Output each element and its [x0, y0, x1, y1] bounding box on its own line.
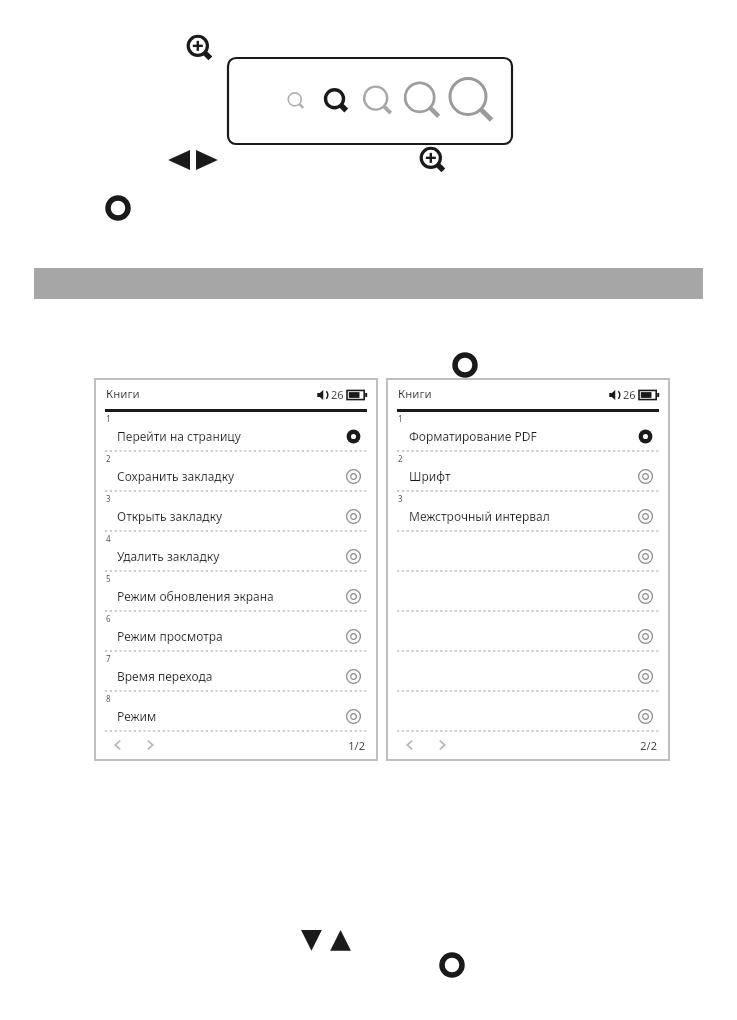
- staticText: Межстрочный интервал: [409, 508, 550, 524]
- staticText: Открыть закладку: [117, 508, 223, 524]
- button[interactable]: 1: [387, 412, 669, 452]
- button[interactable]: Down and up: [300, 928, 352, 952]
- button[interactable]: 3: [95, 492, 377, 532]
- staticText: Удалить закладку: [117, 548, 220, 564]
- staticText: 8: [106, 693, 111, 704]
- staticText: Книги: [398, 386, 432, 402]
- button[interactable]: Next page: [431, 734, 453, 756]
- button[interactable]: 6: [95, 612, 377, 652]
- staticText: 1: [398, 413, 403, 424]
- button[interactable]: [387, 692, 669, 732]
- staticText: 26: [331, 387, 344, 402]
- staticText: 3: [106, 493, 111, 504]
- staticText: 2/2: [640, 738, 657, 753]
- button[interactable]: 2: [95, 452, 377, 492]
- staticText: Режим: [117, 708, 157, 724]
- staticText: Форматирование PDF: [409, 428, 537, 444]
- staticText: 3: [398, 493, 403, 504]
- button[interactable]: 7: [95, 652, 377, 692]
- button[interactable]: 3: [387, 492, 669, 532]
- button[interactable]: 2: [387, 452, 669, 492]
- staticText: 6: [106, 613, 111, 624]
- staticText: 26: [623, 387, 636, 402]
- staticText: Перейти на страницу: [117, 428, 241, 444]
- button[interactable]: 1: [95, 412, 377, 452]
- staticText: 5: [106, 573, 111, 584]
- button[interactable]: Previous page: [107, 734, 129, 756]
- staticText: Шрифт: [409, 468, 451, 484]
- staticText: 2: [398, 453, 403, 464]
- button[interactable]: Previous and next: [166, 147, 220, 173]
- staticText: Режим обновления экрана: [117, 588, 274, 604]
- button[interactable]: [387, 652, 669, 692]
- button[interactable]: Zoom in: [418, 146, 450, 178]
- button[interactable]: [387, 572, 669, 612]
- staticText: Время перехода: [117, 668, 213, 684]
- staticText: 1/2: [348, 738, 365, 753]
- button[interactable]: 5: [95, 572, 377, 612]
- staticText: 7: [106, 653, 111, 664]
- staticText: Книги: [106, 386, 140, 402]
- staticText: 4: [106, 533, 111, 544]
- staticText: 2: [106, 453, 111, 464]
- button[interactable]: Next page: [139, 734, 161, 756]
- button[interactable]: 4: [95, 532, 377, 572]
- staticText: 1: [106, 413, 111, 424]
- button[interactable]: 8: [95, 692, 377, 732]
- staticText: Сохранить закладку: [117, 468, 235, 484]
- button[interactable]: [387, 532, 669, 572]
- button[interactable]: Zoom in: [185, 34, 217, 66]
- staticText: Режим просмотра: [117, 628, 223, 644]
- button[interactable]: [387, 612, 669, 652]
- button[interactable]: Previous page: [399, 734, 421, 756]
